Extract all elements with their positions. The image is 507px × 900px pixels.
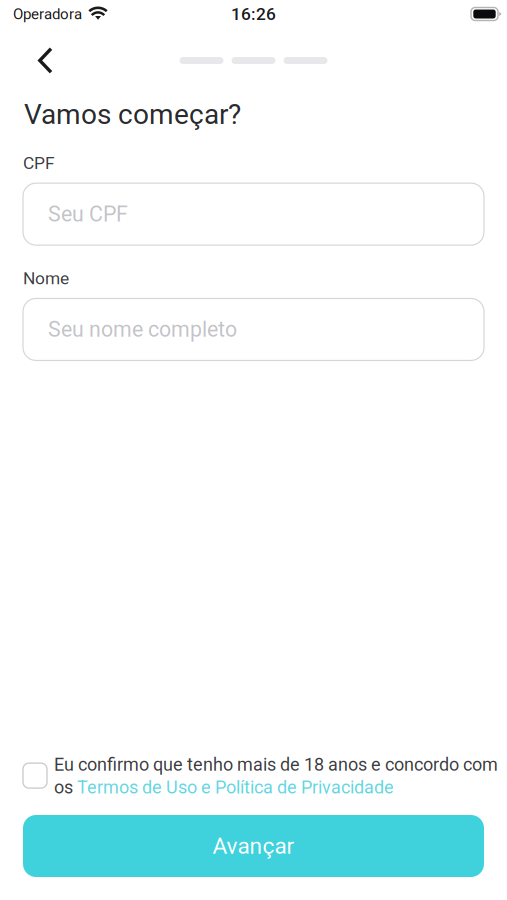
button[interactable]: Avançar bbox=[23, 815, 484, 877]
staticText: 16:26 bbox=[231, 4, 276, 24]
button[interactable]: Voltar bbox=[0, 36, 65, 85]
staticText: Avançar bbox=[212, 833, 294, 859]
staticText: Seu nome completo bbox=[48, 317, 237, 342]
staticText: Nome bbox=[23, 268, 69, 288]
staticText: CPF bbox=[23, 153, 55, 173]
staticText: Eu confirmo que tenho mais de 18 anos e … bbox=[54, 754, 498, 798]
staticText: Vamos começar? bbox=[24, 98, 241, 131]
staticText: Seu CPF bbox=[48, 202, 128, 227]
staticText: Operadora bbox=[13, 5, 82, 23]
button[interactable]: Confirmo que tenho mais de 18 anos bbox=[23, 754, 47, 788]
